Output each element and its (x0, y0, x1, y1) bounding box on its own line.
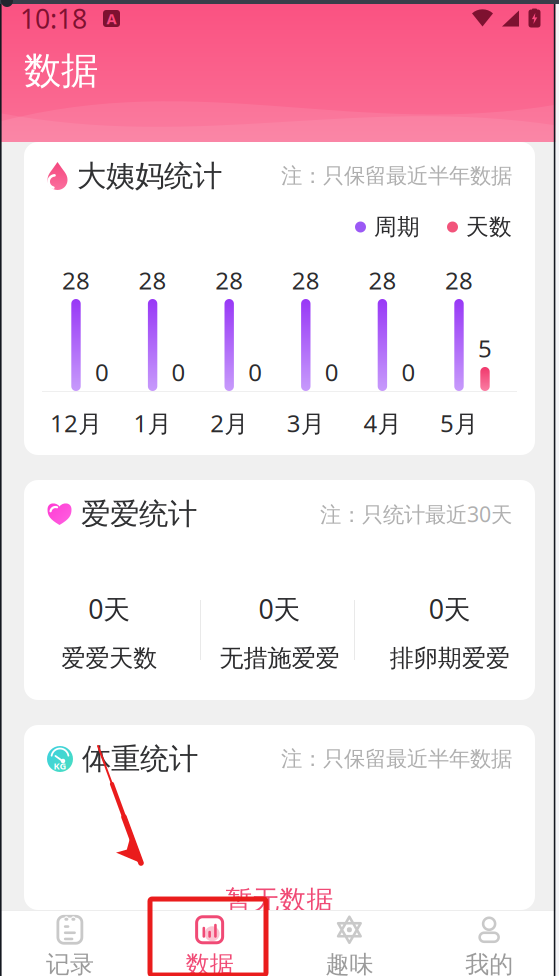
staticText: 4月 (363, 407, 401, 439)
staticText: 28 (62, 264, 90, 296)
staticText: 注：只统计最近30天 (320, 500, 512, 528)
staticText: 28 (215, 264, 243, 296)
button[interactable]: 记录 (0, 911, 140, 976)
staticText: 28 (445, 264, 473, 296)
staticText: 28 (139, 264, 167, 296)
staticText: 大姨妈统计 (77, 158, 222, 194)
staticText: 记录 (46, 950, 94, 976)
staticText: 天数 (466, 213, 512, 241)
staticText: 0 (248, 356, 262, 388)
staticText: 趣味 (325, 950, 373, 976)
staticText: 爱爱天数 (61, 643, 157, 673)
staticText: 0 (401, 356, 415, 388)
staticText: 10:18 (20, 1, 87, 36)
button[interactable]: 趣味 (279, 911, 419, 976)
staticText: 0天 (258, 591, 300, 626)
staticText: 1月 (134, 407, 172, 439)
staticText: 5月 (440, 407, 478, 439)
button[interactable]: 我的 (419, 911, 559, 976)
staticText: 0天 (429, 591, 471, 626)
staticText: 28 (292, 264, 320, 296)
staticText: 0 (95, 356, 109, 388)
staticText: 体重统计 (82, 741, 198, 777)
staticText: 数据 (186, 950, 234, 976)
staticText: A (106, 9, 116, 28)
staticText: 周期 (374, 213, 420, 241)
staticText: 爱爱统计 (81, 496, 197, 532)
staticText: 5 (478, 332, 492, 364)
staticText: 无措施爱爱 (219, 643, 339, 673)
staticText: 0 (325, 356, 339, 388)
staticText: 排卵期爱爱 (390, 643, 510, 673)
staticText: 数据 (24, 48, 98, 94)
staticText: 12月 (50, 407, 102, 439)
staticText: 3月 (287, 407, 325, 439)
staticText: 0 (172, 356, 186, 388)
staticText: KG (53, 760, 66, 772)
staticText: 28 (368, 264, 396, 296)
staticText: 注：只保留最近半年数据 (281, 746, 512, 772)
staticText: 暂无数据 (225, 884, 333, 916)
button[interactable]: 数据 (140, 911, 280, 976)
staticText: 0天 (88, 591, 130, 626)
staticText: 注：只保留最近半年数据 (281, 163, 512, 189)
staticText: 2月 (210, 407, 248, 439)
staticText: 我的 (465, 950, 513, 976)
